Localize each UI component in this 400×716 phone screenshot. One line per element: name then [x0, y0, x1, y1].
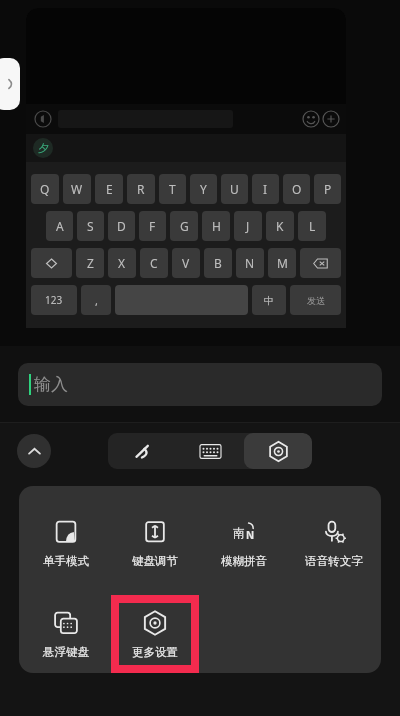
button[interactable]: E — [95, 174, 123, 204]
button[interactable]: Settings — [244, 433, 312, 469]
button[interactable]: 中 — [252, 285, 286, 315]
button[interactable]: Keyboard — [176, 433, 244, 469]
staticText: 更多设置 — [132, 645, 178, 659]
button[interactable]: D — [108, 211, 135, 241]
staticText: C — [150, 255, 158, 271]
staticText: U — [230, 181, 239, 197]
staticText: P — [324, 181, 332, 197]
staticText: 中 — [264, 294, 274, 307]
button[interactable]: H — [202, 211, 230, 241]
staticText: 悬浮键盘 — [43, 645, 89, 659]
staticText: R — [137, 181, 145, 197]
button[interactable]: 更多设置 — [111, 595, 199, 673]
staticText: S — [87, 218, 94, 234]
staticText: 123 — [45, 293, 63, 307]
button[interactable]: I — [252, 174, 279, 204]
staticText: T — [169, 181, 176, 197]
staticText: 单手模式 — [43, 554, 89, 568]
button[interactable]: B — [204, 248, 232, 278]
button[interactable]: Backspace — [300, 248, 341, 278]
staticText: A — [56, 218, 64, 234]
button[interactable]: G — [170, 211, 198, 241]
button[interactable]: R — [127, 174, 155, 204]
button[interactable]: Z — [76, 248, 104, 278]
staticText: 南 — [233, 525, 245, 540]
staticText: B — [214, 255, 222, 271]
button[interactable]: 123 — [31, 285, 77, 315]
button[interactable]: 键盘调节 — [111, 496, 199, 591]
button[interactable]: W — [63, 174, 91, 204]
button[interactable]: J — [234, 211, 262, 241]
button[interactable]: 悬浮键盘 — [22, 595, 110, 673]
staticText: I — [263, 181, 268, 197]
button[interactable]: S — [77, 211, 104, 241]
button[interactable]: Shift — [31, 248, 72, 278]
button[interactable]: K — [266, 211, 294, 241]
staticText: 键盘调节 — [132, 554, 178, 568]
staticText: J — [246, 218, 250, 234]
button[interactable]: Collapse — [17, 434, 51, 468]
staticText: F — [149, 218, 156, 234]
button[interactable]: V — [172, 248, 200, 278]
button[interactable]: P — [314, 174, 341, 204]
button[interactable]: M — [268, 248, 296, 278]
button[interactable]: Q — [31, 174, 59, 204]
staticText: E — [106, 181, 113, 197]
staticText: 夕 — [38, 141, 49, 155]
button[interactable]: X — [108, 248, 136, 278]
staticText: W — [71, 181, 83, 197]
staticText: N — [245, 255, 255, 271]
button[interactable]: U — [221, 174, 248, 204]
button[interactable]: 发送 — [290, 285, 341, 315]
staticText: V — [182, 255, 190, 271]
button[interactable]: T — [159, 174, 186, 204]
button[interactable]: 南 — [200, 496, 288, 591]
button[interactable]: A — [46, 211, 73, 241]
staticText: N — [246, 528, 255, 542]
staticText: K — [276, 218, 284, 234]
staticText: 语音转文字 — [305, 554, 363, 568]
button[interactable]: Expand panel — [0, 58, 20, 110]
button[interactable]: F — [139, 211, 166, 241]
button[interactable]: 语音转文字 — [290, 496, 378, 591]
staticText: X — [118, 255, 126, 271]
button[interactable]: C — [140, 248, 168, 278]
button[interactable]: Handwriting — [108, 433, 176, 469]
button[interactable]: Y — [190, 174, 217, 204]
button[interactable]: O — [283, 174, 310, 204]
staticText: Q — [40, 181, 50, 197]
button[interactable]: N — [236, 248, 264, 278]
staticText: 发送 — [307, 295, 325, 306]
staticText: , — [95, 293, 98, 308]
staticText: L — [309, 218, 316, 234]
staticText: Y — [200, 181, 207, 197]
staticText: M — [277, 255, 288, 271]
staticText: 模糊拼音 — [221, 554, 267, 568]
button[interactable]: 输入 — [18, 363, 382, 406]
button[interactable]: L — [298, 211, 326, 241]
staticText: 输入 — [34, 374, 68, 395]
button[interactable]: 单手模式 — [22, 496, 110, 591]
staticText: Z — [87, 255, 94, 271]
staticText: O — [292, 181, 302, 197]
button[interactable]: , — [81, 285, 111, 315]
staticText: D — [117, 218, 126, 234]
staticText: H — [212, 218, 221, 234]
staticText: G — [180, 218, 189, 234]
